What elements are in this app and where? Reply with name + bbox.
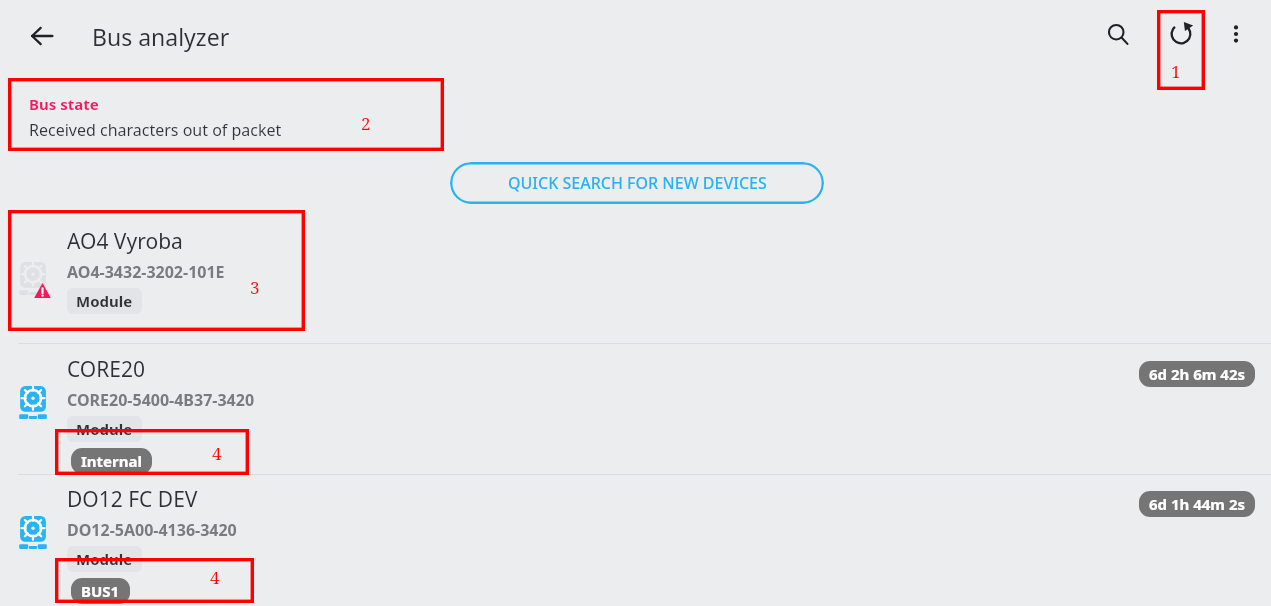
staticText: Internal [81,451,142,471]
button[interactable]: Module [67,416,142,442]
button[interactable]: More options [1216,14,1256,54]
button[interactable]: Module [67,546,142,572]
staticText: CORE20-5400-4B37-3420 [67,389,255,411]
button[interactable]: Back [22,16,62,56]
staticText: Module [76,549,133,569]
staticText: Module [76,419,133,439]
staticText: Received characters out of packet [29,119,282,141]
staticText: AO4 Vyroba [67,227,183,256]
staticText: DO12 FC DEV [67,485,198,514]
button[interactable]: Search [1098,14,1138,54]
staticText: 4 [210,566,220,589]
staticText: 6d 1h 44m 2s [1149,494,1245,514]
button[interactable]: Module [67,288,142,314]
button[interactable]: 6d 1h 44m 2s [1139,491,1255,517]
staticText: Bus state [29,94,99,114]
button[interactable]: 6d 2h 6m 42s [1139,361,1255,387]
button[interactable]: QUICK SEARCH FOR NEW DEVICES [450,162,824,204]
staticText: 4 [212,442,222,465]
staticText: DO12-5A00-4136-3420 [67,519,237,541]
button[interactable]: CORE20 [0,344,1271,474]
staticText: Module [76,291,133,311]
staticText: 2 [361,112,371,135]
button[interactable]: Internal [71,448,152,474]
staticText: BUS1 [81,581,120,601]
button[interactable]: DO12 FC DEV [0,474,1271,604]
staticText: Bus analyzer [92,21,230,52]
button[interactable]: Refresh [1161,14,1201,54]
button[interactable]: BUS1 [71,578,130,604]
staticText: AO4-3432-3202-101E [67,261,225,283]
button[interactable]: AO4 Vyroba [0,214,1271,343]
staticText: QUICK SEARCH FOR NEW DEVICES [508,172,767,194]
button[interactable]: Bus state [8,78,444,151]
staticText: 1 [1171,60,1181,83]
staticText: 6d 2h 6m 42s [1149,364,1245,384]
staticText: 3 [250,276,260,299]
staticText: CORE20 [67,355,146,384]
